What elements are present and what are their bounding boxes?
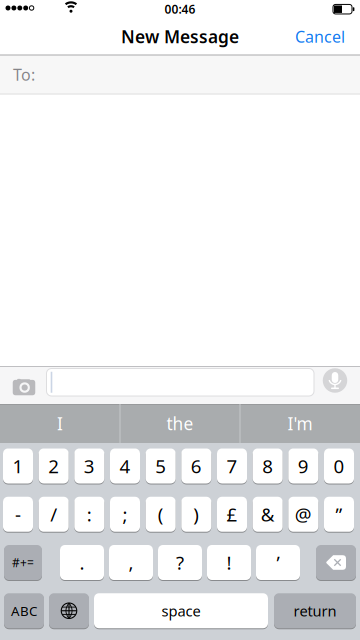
button[interactable]: Dictate [322,368,347,393]
button[interactable]: return [274,593,356,629]
staticText: ? [176,550,184,575]
staticText: 0 [333,454,344,478]
staticText: the [166,412,193,435]
button[interactable]: 6 [181,448,211,484]
staticText: 9 [298,454,309,478]
button[interactable]: 7 [217,448,247,484]
staticText: 8 [262,454,273,478]
button[interactable]: Cancel [280,20,360,52]
staticText: : [87,502,92,527]
button[interactable]: Next Keyboard [49,593,89,629]
button[interactable]: 3 [74,448,104,484]
staticText: Cancel [295,26,345,47]
button[interactable]: #+= [4,544,42,580]
button[interactable]: I'm [241,404,359,443]
button[interactable]: ” [324,496,354,532]
staticText: @ [295,502,312,527]
staticText: 6 [191,454,202,478]
button[interactable]: space [94,593,268,629]
staticText: return [293,601,336,620]
staticText: ( [158,502,164,527]
staticText: 2 [48,454,59,478]
button[interactable]: / [39,496,69,532]
staticText: ABC [11,602,37,620]
button[interactable]: 8 [253,448,283,484]
button[interactable]: 9 [288,448,318,484]
staticText: £ [226,502,237,527]
button[interactable]: ) [181,496,211,532]
staticText: ’ [276,550,279,575]
staticText: 7 [226,454,237,478]
staticText: / [50,502,57,527]
button[interactable]: ? [158,544,202,580]
button[interactable]: ! [207,544,251,580]
button[interactable]: I [1,404,119,443]
button[interactable]: 1 [3,448,33,484]
button[interactable]: Take Photo [9,374,39,398]
button[interactable]: . [60,544,104,580]
staticText: - [15,502,21,527]
button[interactable]: ; [110,496,140,532]
staticText: 1 [12,454,23,478]
button[interactable]: 5 [146,448,176,484]
staticText: ) [193,502,199,527]
staticText: 5 [155,454,166,478]
button[interactable]: 4 [110,448,140,484]
button[interactable]: ABC [4,593,44,629]
button[interactable]: @ [288,496,318,532]
button[interactable]: 0 [324,448,354,484]
staticText: To: [13,64,35,85]
staticText: New Message [121,25,239,48]
staticText: I'm [287,412,312,435]
button[interactable]: Delete [316,544,356,580]
staticText: . [79,550,84,575]
staticText: , [128,550,133,575]
button[interactable]: & [253,496,283,532]
button[interactable]: ’ [256,544,300,580]
button[interactable]: , [109,544,153,580]
staticText: ” [335,502,342,527]
button[interactable]: - [3,496,33,532]
button[interactable]: : [74,496,104,532]
staticText: 4 [119,454,130,478]
button[interactable]: 2 [39,448,69,484]
staticText: I [57,412,63,435]
staticText: ! [226,550,231,575]
staticText: 3 [84,454,95,478]
button[interactable]: the [121,404,239,443]
staticText: ; [122,502,127,527]
staticText: #+= [12,554,34,570]
staticText: & [261,502,275,527]
button[interactable]: ( [146,496,176,532]
button[interactable]: £ [217,496,247,532]
staticText: 00:46 [164,1,195,17]
staticText: space [161,601,200,620]
